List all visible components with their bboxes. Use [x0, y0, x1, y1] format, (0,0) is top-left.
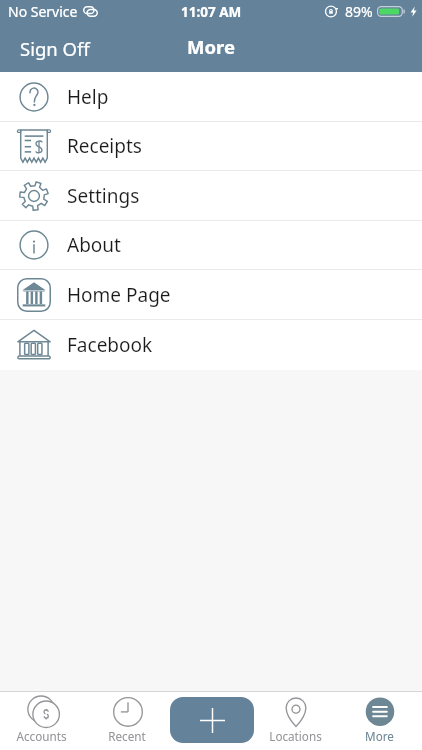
- button[interactable]: Receipts: [0, 122, 422, 170]
- button[interactable]: More: [338, 691, 422, 750]
- button[interactable]: Add: [170, 697, 254, 743]
- staticText: Facebook: [67, 332, 153, 358]
- staticText: 11:07 AM: [181, 3, 242, 21]
- staticText: Settings: [67, 183, 140, 209]
- button[interactable]: Facebook: [0, 320, 422, 370]
- staticText: No Service: [8, 2, 78, 21]
- staticText: Home Page: [67, 282, 171, 308]
- button[interactable]: About: [0, 221, 422, 269]
- staticText: Receipts: [67, 133, 142, 159]
- staticText: About: [67, 232, 121, 258]
- staticText: More: [187, 34, 235, 59]
- staticText: Locations: [269, 728, 322, 744]
- button[interactable]: Sign Off: [0, 31, 102, 70]
- staticText: Recent: [108, 728, 146, 744]
- staticText: More: [365, 728, 394, 744]
- button[interactable]: Locations: [254, 691, 338, 750]
- staticText: Accounts: [16, 728, 67, 744]
- button[interactable]: Settings: [0, 171, 422, 220]
- button[interactable]: Help: [0, 72, 422, 121]
- staticText: Help: [67, 84, 109, 110]
- staticText: Sign Off: [20, 36, 90, 61]
- staticText: 89%: [345, 2, 373, 21]
- button[interactable]: Home Page: [0, 270, 422, 319]
- button[interactable]: Recent: [85, 691, 170, 750]
- button[interactable]: Accounts: [0, 691, 85, 750]
